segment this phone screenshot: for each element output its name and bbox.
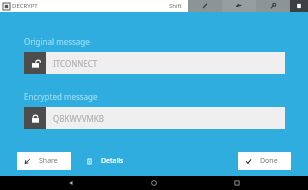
button[interactable]: Recents	[225, 176, 249, 190]
staticText: Details	[101, 156, 124, 166]
button[interactable]: Share	[17, 152, 71, 170]
staticText: Encrypted message	[24, 91, 98, 102]
button[interactable]: Back	[59, 176, 83, 190]
staticText: Share	[39, 156, 58, 166]
staticText: Done	[260, 156, 278, 166]
button[interactable]: Home	[142, 176, 166, 190]
button[interactable]: QBKWVVMKB	[24, 107, 285, 129]
staticText: QBKWVVMKB	[53, 113, 104, 124]
button[interactable]: ITCONNECT	[24, 52, 285, 74]
button[interactable]: Key	[256, 0, 290, 12]
button[interactable]: Delete	[290, 0, 308, 12]
staticText: Shift	[169, 2, 182, 10]
staticText: Original message	[24, 36, 90, 47]
button[interactable]: DECRYPT	[0, 0, 169, 12]
button[interactable]: Details	[79, 152, 137, 170]
button[interactable]: Undo	[222, 0, 256, 12]
button[interactable]: Edit	[188, 0, 222, 12]
staticText: DECRYPT	[12, 2, 38, 10]
button[interactable]: Done	[238, 152, 291, 170]
staticText: ITCONNECT	[53, 58, 98, 69]
